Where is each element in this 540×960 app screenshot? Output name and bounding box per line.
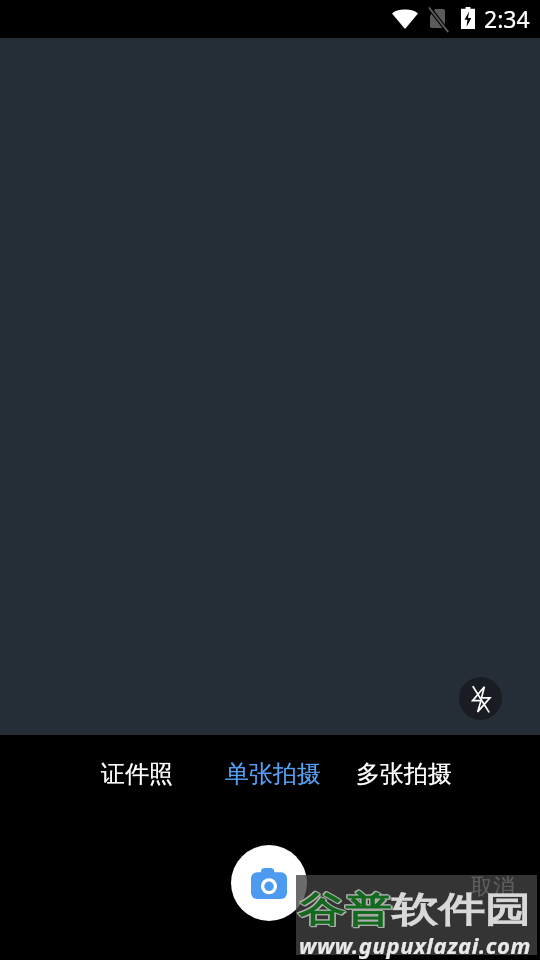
button[interactable]: 单张拍摄 — [223, 753, 323, 795]
staticText: 谷普 — [299, 889, 392, 933]
staticText: 2:34 — [484, 3, 530, 34]
button[interactable]: Take photo — [231, 845, 307, 921]
staticText: 取消 — [471, 873, 515, 901]
staticText: 谷普 — [298, 889, 391, 933]
staticText: 谷普 — [297, 887, 390, 931]
staticText: www.gupuxlazai.com — [299, 930, 532, 960]
button[interactable]: Flash off — [459, 677, 502, 720]
staticText: 多张拍摄 — [356, 759, 452, 789]
staticText: 软件园 — [391, 888, 531, 932]
staticText: 谷普 — [298, 888, 391, 932]
staticText: 证件照 — [101, 759, 173, 789]
staticText: 谷普 — [299, 888, 392, 932]
staticText: 谷普 — [298, 887, 391, 931]
staticText: 单张拍摄 — [225, 759, 321, 789]
staticText: 谷普 — [297, 888, 390, 932]
button[interactable]: 多张拍摄 — [354, 753, 454, 795]
button[interactable]: 证件照 — [99, 753, 175, 795]
button[interactable]: 取消 — [466, 868, 520, 906]
